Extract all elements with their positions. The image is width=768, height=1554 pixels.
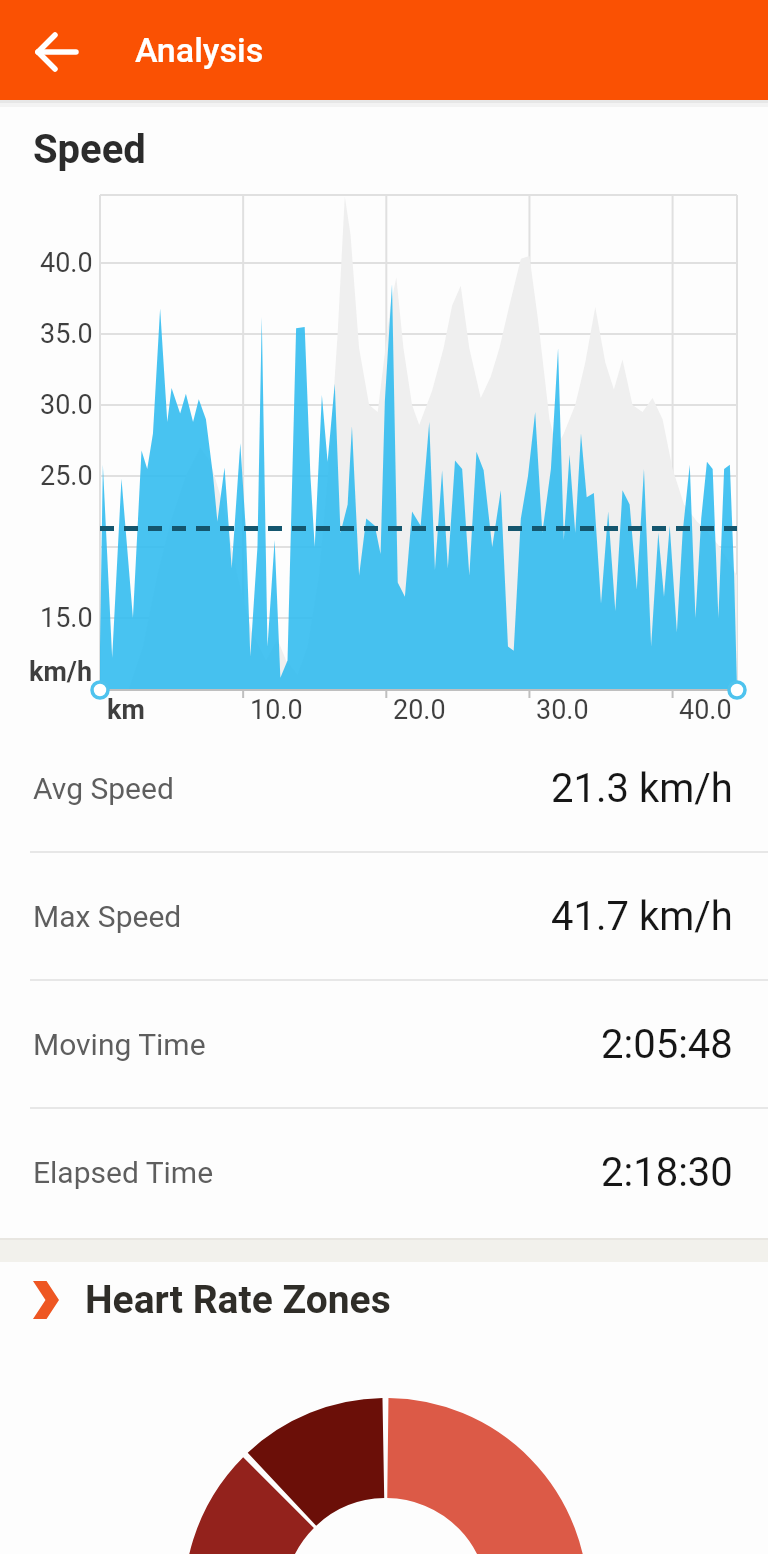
staticText: 30.0	[536, 694, 589, 726]
button[interactable]: Max Speed	[0, 853, 768, 979]
staticText: 21.3 km/h	[551, 765, 733, 812]
staticText: 20.0	[393, 694, 446, 726]
staticText: km/h	[29, 656, 93, 688]
staticText: 40.0	[679, 694, 732, 726]
staticText: 10.0	[250, 694, 303, 726]
staticText: Max Speed	[33, 899, 182, 934]
button[interactable]: Heart Rate Zones	[33, 1275, 391, 1325]
button[interactable]: Elapsed Time	[0, 1109, 768, 1235]
staticText: 30.0	[40, 389, 93, 421]
staticText: Speed	[33, 126, 146, 173]
staticText: km	[107, 694, 145, 726]
staticText: Elapsed Time	[33, 1155, 214, 1190]
staticText: 2:18:30	[601, 1149, 733, 1196]
staticText: Heart Rate Zones	[85, 1277, 391, 1323]
staticText: 25.0	[40, 460, 93, 492]
button[interactable]	[28, 23, 86, 81]
button[interactable]: Moving Time	[0, 981, 768, 1107]
staticText: 2:05:48	[601, 1021, 733, 1068]
staticText: Avg Speed	[33, 771, 174, 806]
staticText: 15.0	[40, 602, 93, 634]
staticText: Analysis	[135, 30, 264, 70]
staticText: 40.0	[40, 247, 93, 279]
staticText: 41.7 km/h	[551, 893, 733, 940]
button[interactable]: Avg Speed	[0, 725, 768, 851]
staticText: Moving Time	[33, 1027, 206, 1062]
staticText: 35.0	[40, 318, 93, 350]
